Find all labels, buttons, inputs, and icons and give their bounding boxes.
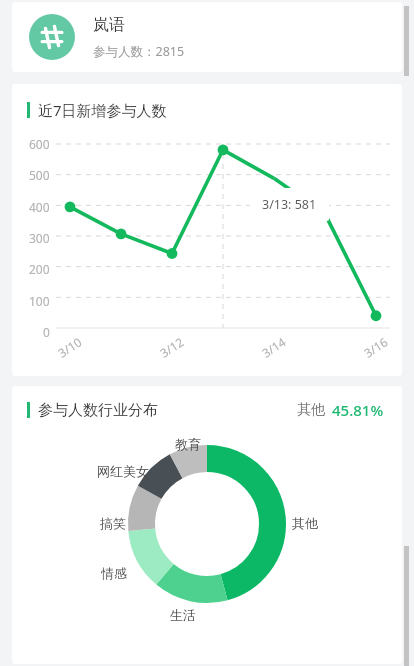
staticText: 其他 — [292, 515, 318, 531]
staticText: 3/13: 581 — [262, 196, 317, 213]
staticText: 3/12 — [157, 333, 187, 361]
staticText: 600 — [29, 136, 50, 152]
staticText: 情感 — [101, 565, 127, 581]
staticText: 生活 — [170, 607, 196, 623]
staticText: 搞笑 — [100, 515, 126, 531]
staticText: 其他 — [297, 401, 325, 419]
staticText: 岚语 — [93, 15, 125, 35]
button[interactable]: 近7日新增参与人数 — [12, 84, 402, 376]
staticText: 500 — [29, 167, 50, 183]
staticText: 3/16 — [361, 333, 391, 361]
staticText: 3/10 — [55, 333, 85, 361]
staticText: 教育 — [175, 436, 201, 452]
staticText: 45.81% — [332, 400, 384, 420]
staticText: 近7日新增参与人数 — [38, 100, 167, 120]
staticText: 参与人数行业分布 — [38, 401, 158, 420]
staticText: 网红美女 — [97, 463, 149, 479]
staticText: 200 — [29, 261, 50, 277]
staticText: 300 — [29, 230, 50, 246]
staticText: 0 — [43, 324, 50, 340]
staticText: 400 — [29, 199, 50, 215]
button[interactable]: 参与人数行业分布 — [12, 386, 402, 664]
button[interactable]: Topic avatar — [12, 2, 402, 72]
staticText: 100 — [29, 293, 50, 309]
other: Topic avatar — [29, 14, 75, 60]
staticText: 3/14 — [259, 333, 289, 361]
staticText: 参与人数：2815 — [93, 43, 185, 60]
